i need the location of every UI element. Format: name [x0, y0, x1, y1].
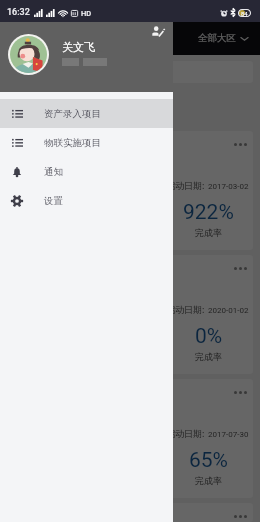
- staticText: 设置: [44, 195, 63, 207]
- staticText: 启动日期:: [166, 427, 205, 439]
- button[interactable]: 物联实施项目: [0, 128, 173, 157]
- staticText: 启动日期:: [166, 179, 205, 191]
- button[interactable]: 设置: [0, 186, 173, 215]
- button[interactable]: [7, 61, 253, 83]
- staticText: 完成率: [195, 351, 222, 362]
- staticText: 全部大区: [198, 32, 236, 44]
- button[interactable]: 华东大区资产录入: [7, 255, 253, 374]
- staticText: 华南大区资产录入: [17, 138, 97, 151]
- staticText: 2017-07-30: [208, 430, 249, 439]
- staticText: 0%: [195, 324, 223, 349]
- staticText: 完成率: [195, 227, 222, 238]
- button[interactable]: 西南大区资产录入: [7, 503, 253, 522]
- button[interactable]: 华北大区资产录入: [7, 379, 253, 498]
- button[interactable]: 通知: [0, 157, 173, 186]
- staticText: HD: [81, 9, 92, 17]
- staticText: 通知: [44, 166, 63, 178]
- staticText: 资产录入项目: [44, 108, 101, 120]
- staticText: 2017-03-02: [208, 182, 249, 191]
- button[interactable]: More options: [232, 389, 249, 396]
- staticText: 65%: [189, 448, 228, 473]
- staticText: 完成率: [195, 475, 222, 486]
- button[interactable]: 全部大区: [198, 32, 249, 44]
- button[interactable]: Edit profile: [149, 23, 165, 39]
- staticText: 物联实施项目: [44, 137, 101, 149]
- staticText: 84: [241, 10, 248, 17]
- button[interactable]: 资产录入项目: [0, 99, 173, 128]
- staticText: 关文飞: [62, 40, 95, 54]
- staticText: --: [45, 200, 57, 225]
- staticText: 启动日期:: [166, 303, 205, 315]
- button[interactable]: More options: [232, 265, 249, 272]
- button[interactable]: More options: [232, 141, 249, 148]
- staticText: 2020-01-02: [208, 306, 249, 315]
- staticText: 16:32: [7, 7, 30, 18]
- button[interactable]: 华南大区资产录入: [7, 131, 253, 250]
- staticText: 922%: [183, 200, 234, 225]
- button[interactable]: More options: [232, 513, 249, 520]
